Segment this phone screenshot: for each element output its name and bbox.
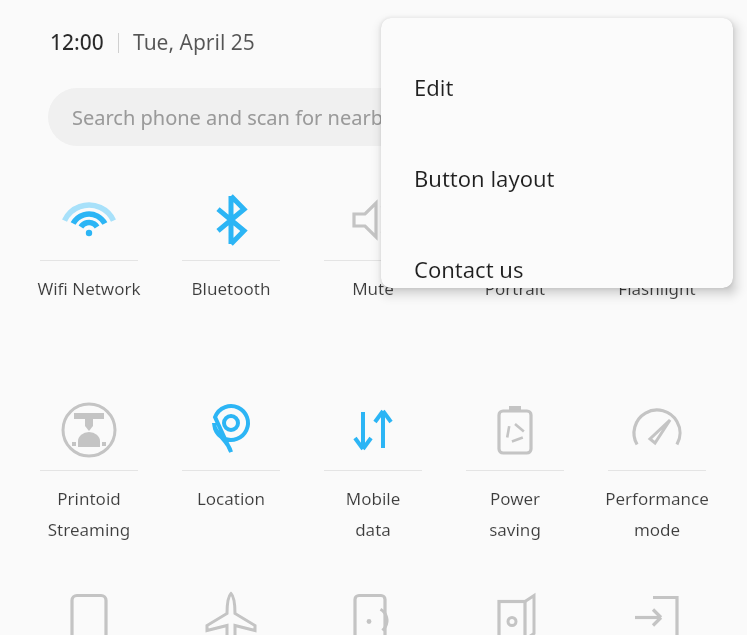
- staticText: Printoid Streaming: [18, 487, 160, 541]
- staticText: Location: [160, 487, 302, 510]
- button[interactable]: Power saving: [444, 400, 586, 541]
- button[interactable]: Location: [160, 400, 302, 510]
- staticText: Tue, April 25: [133, 28, 255, 57]
- staticText: Flashlight: [586, 277, 728, 300]
- staticText: Mobile data: [302, 487, 444, 541]
- staticText: Power saving: [444, 487, 586, 541]
- button[interactable]: Printoid Streaming: [18, 400, 160, 541]
- staticText: Button layout: [414, 163, 555, 193]
- button[interactable]: Quick setting: [444, 600, 586, 635]
- button[interactable]: Bluetooth: [160, 190, 302, 300]
- button[interactable]: Portrait: [444, 190, 586, 300]
- button[interactable]: Search phone and scan for nearby devices: [48, 88, 648, 146]
- button[interactable]: Button layout: [381, 145, 733, 211]
- button[interactable]: Quick setting: [302, 600, 444, 635]
- button[interactable]: Mobile data: [302, 400, 444, 541]
- staticText: Performance mode: [586, 487, 728, 541]
- staticText: Bluetooth: [160, 277, 302, 300]
- staticText: Edit: [414, 72, 454, 102]
- button[interactable]: Wifi Network: [18, 190, 160, 300]
- staticText: 12:00: [50, 28, 104, 57]
- button[interactable]: Quick setting: [586, 600, 728, 635]
- button[interactable]: Quick setting: [160, 600, 302, 635]
- button[interactable]: Contact us: [381, 236, 733, 288]
- staticText: Mute: [302, 277, 444, 300]
- staticText: Search phone and scan for nearby devices: [72, 104, 467, 131]
- staticText: Contact us: [414, 254, 524, 284]
- button[interactable]: Mute: [302, 190, 444, 300]
- button[interactable]: Quick setting: [18, 600, 160, 635]
- staticText: Wifi Network: [18, 277, 160, 300]
- staticText: Portrait: [444, 277, 586, 300]
- button[interactable]: Flashlight: [586, 190, 728, 300]
- button[interactable]: Performance mode: [586, 400, 728, 541]
- button[interactable]: Edit: [381, 54, 733, 120]
